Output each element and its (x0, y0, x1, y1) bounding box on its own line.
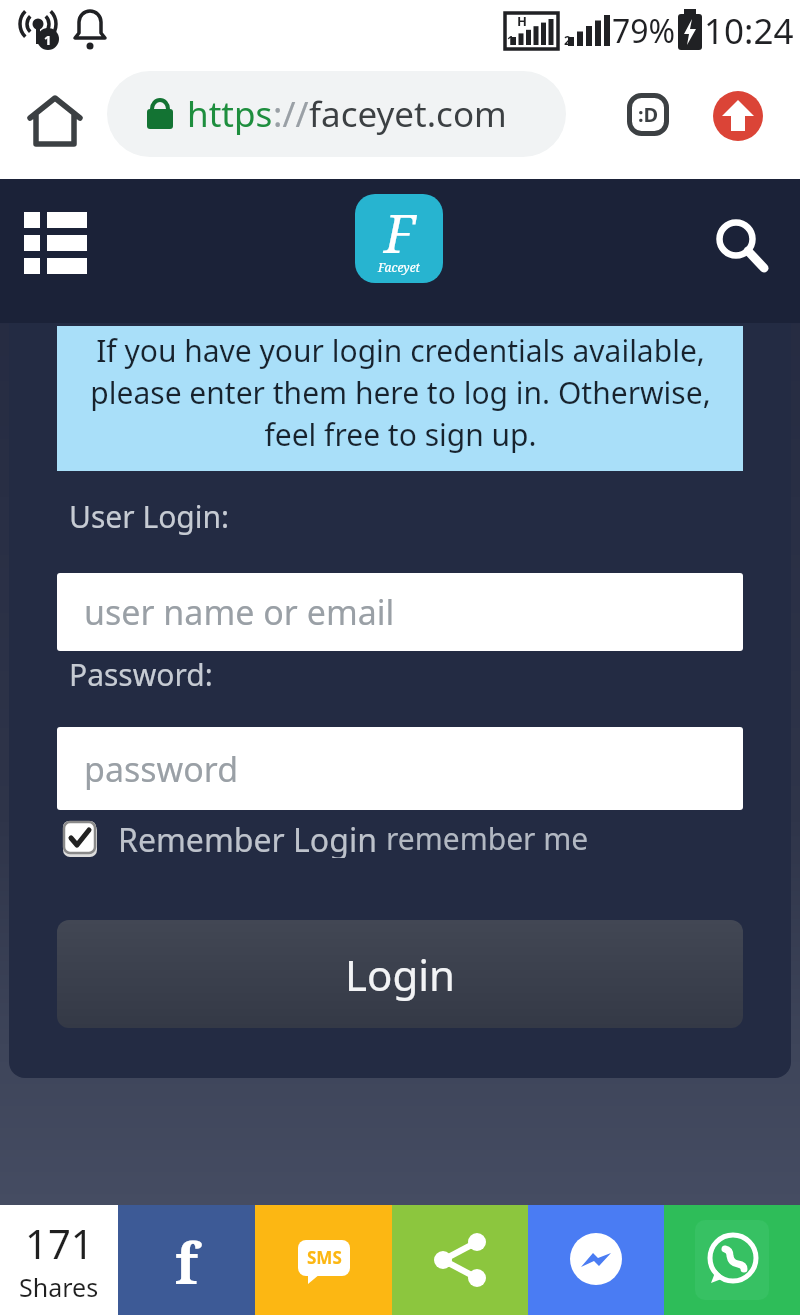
button[interactable]: 171 (0, 1205, 118, 1315)
staticText: f (175, 1224, 198, 1300)
button[interactable]: SMS (255, 1205, 392, 1315)
staticText: https (187, 90, 273, 138)
button[interactable]: :D (627, 93, 669, 136)
staticText: 171 (25, 1216, 94, 1270)
staticText: Remember Login (118, 818, 386, 858)
staticText: F (384, 197, 415, 268)
button[interactable] (528, 1205, 664, 1315)
staticText: :D (638, 101, 659, 128)
staticText: SMS (307, 1246, 342, 1269)
staticText: 2 (564, 32, 571, 48)
staticText: User Login: (69, 496, 230, 537)
staticText: faceyet.com (309, 90, 507, 138)
button[interactable]: F (355, 194, 443, 283)
staticText: If you have your login credentials avail… (90, 330, 711, 455)
button[interactable]: f (118, 1205, 255, 1315)
button[interactable]: Remember Login (63, 818, 643, 858)
staticText: 1 (44, 31, 52, 49)
staticText: remember me (386, 818, 589, 858)
staticText: Faceyet (378, 259, 420, 275)
button[interactable] (24, 212, 88, 276)
staticText: 1 (507, 32, 514, 48)
button[interactable]: password (57, 727, 743, 810)
staticText: 10:24 (704, 7, 794, 55)
staticText: user name or email (84, 589, 395, 635)
button[interactable]: https (107, 71, 566, 157)
button[interactable] (392, 1205, 528, 1315)
button[interactable]: Login (57, 920, 743, 1028)
button[interactable] (664, 1205, 800, 1315)
staticText: H (517, 12, 527, 30)
button[interactable] (713, 91, 763, 141)
button[interactable] (28, 92, 84, 148)
staticText: password (84, 746, 239, 792)
button[interactable] (712, 216, 774, 278)
staticText: Login (345, 946, 456, 1003)
staticText: Password: (69, 654, 213, 695)
button[interactable]: user name or email (57, 573, 743, 651)
staticText: :// (273, 90, 309, 138)
staticText: Shares (19, 1270, 99, 1304)
staticText: 79% (612, 9, 676, 53)
